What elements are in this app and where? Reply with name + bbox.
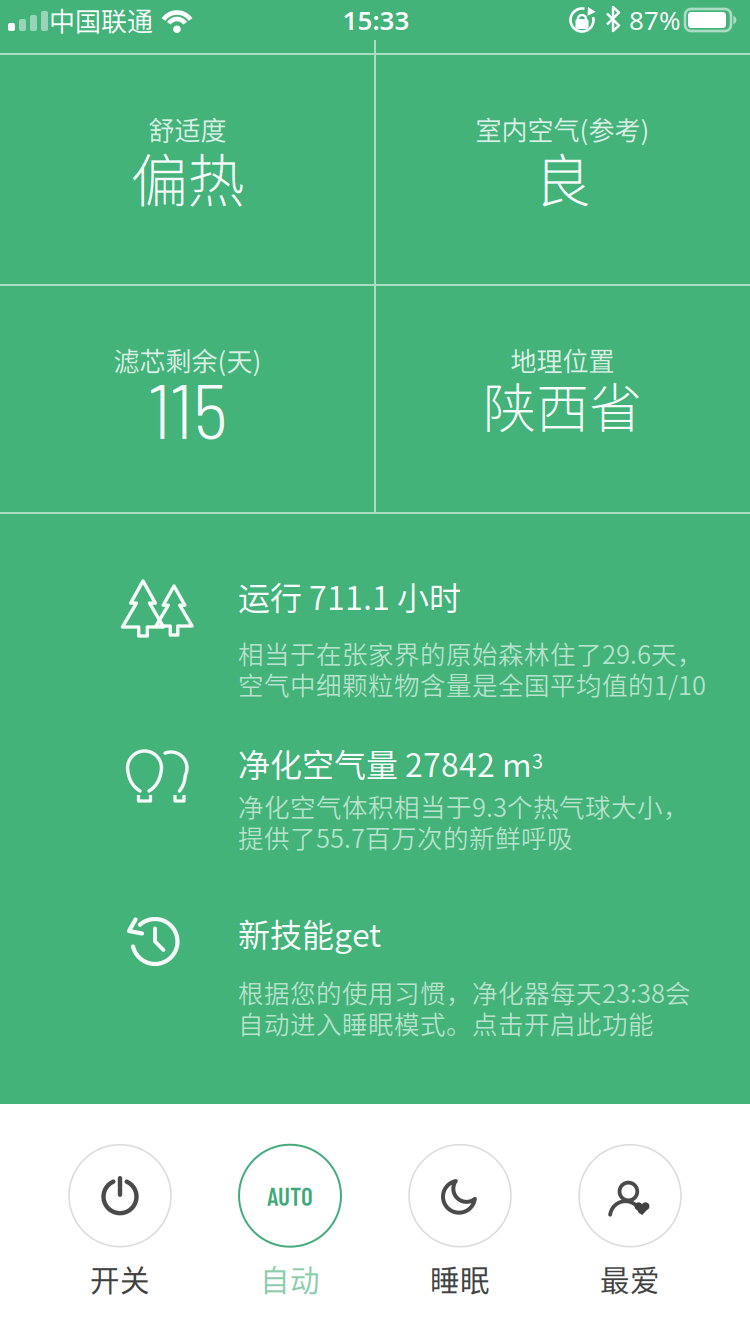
staticText: 相当于在张家界的原始森林住了29.6天， xyxy=(238,634,703,671)
staticText: 室内空气(参考) xyxy=(475,110,649,148)
staticText: 陕西省 xyxy=(483,367,642,443)
staticText: 偏热 xyxy=(130,136,244,218)
staticText: 净化空气体积相当于9.3个热气球大小， xyxy=(238,787,689,824)
staticText: 空气中细颗粒物含量是全国平均值的1/10 xyxy=(238,665,706,702)
staticText: 良 xyxy=(534,136,591,218)
staticText: 开关 xyxy=(90,1257,150,1300)
button[interactable]: 最爱 xyxy=(545,1104,715,1334)
staticText: 新技能get xyxy=(238,910,381,956)
staticText: 睡眠 xyxy=(430,1257,490,1300)
staticText: 舒适度 xyxy=(148,110,226,148)
staticText: 滤芯剩余(天) xyxy=(113,341,261,379)
staticText: 自动 xyxy=(260,1257,320,1300)
staticText: 地理位置 xyxy=(510,341,614,379)
staticText: 115 xyxy=(148,363,228,454)
button[interactable]: 自动 xyxy=(205,1104,375,1334)
staticText: 最爱 xyxy=(600,1257,660,1300)
button[interactable]: 睡眠 xyxy=(375,1104,545,1334)
staticText: 运行 711.1 小时 xyxy=(238,573,461,619)
button[interactable]: 新技能get xyxy=(0,870,750,1030)
staticText: 提供了55.7百万次的新鲜呼吸 xyxy=(238,818,573,855)
staticText: 自动进入睡眠模式。点击开启此功能 xyxy=(238,1004,654,1041)
staticText: 87% xyxy=(629,2,681,38)
staticText: 15:33 xyxy=(342,2,409,38)
staticText: 净化空气量 27842 m3 xyxy=(238,740,543,786)
button[interactable]: 开关 xyxy=(35,1104,205,1334)
staticText: AUTO xyxy=(267,1181,313,1211)
staticText: 中国联通 xyxy=(49,1,153,39)
staticText: 根据您的使用习惯，净化器每天23:38会 xyxy=(238,973,691,1010)
